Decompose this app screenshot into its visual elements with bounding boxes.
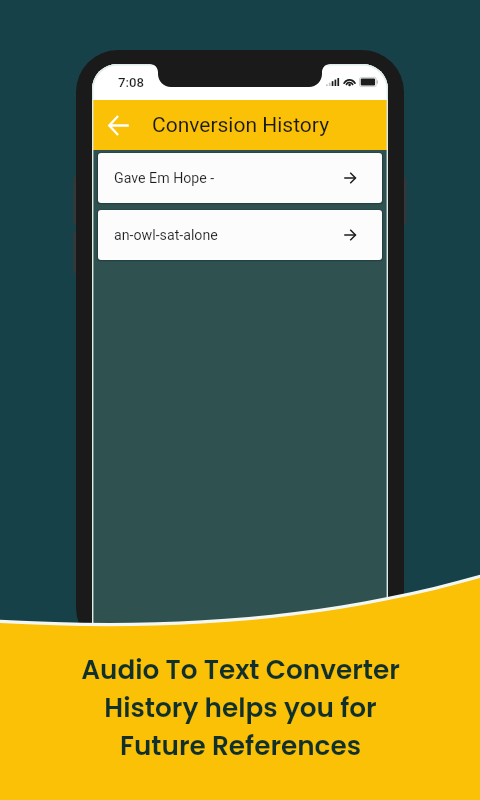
staticText: Conversion History bbox=[152, 113, 330, 138]
button[interactable]: Back bbox=[97, 104, 139, 146]
staticText: 7:08 bbox=[118, 75, 144, 90]
button[interactable]: Gave Em Hope - bbox=[98, 153, 382, 203]
staticText: Audio To Text Converter History helps yo… bbox=[81, 651, 400, 764]
staticText: an-owl-sat-alone bbox=[114, 227, 218, 244]
button[interactable]: an-owl-sat-alone bbox=[98, 210, 382, 260]
staticText: Gave Em Hope - bbox=[114, 170, 215, 187]
